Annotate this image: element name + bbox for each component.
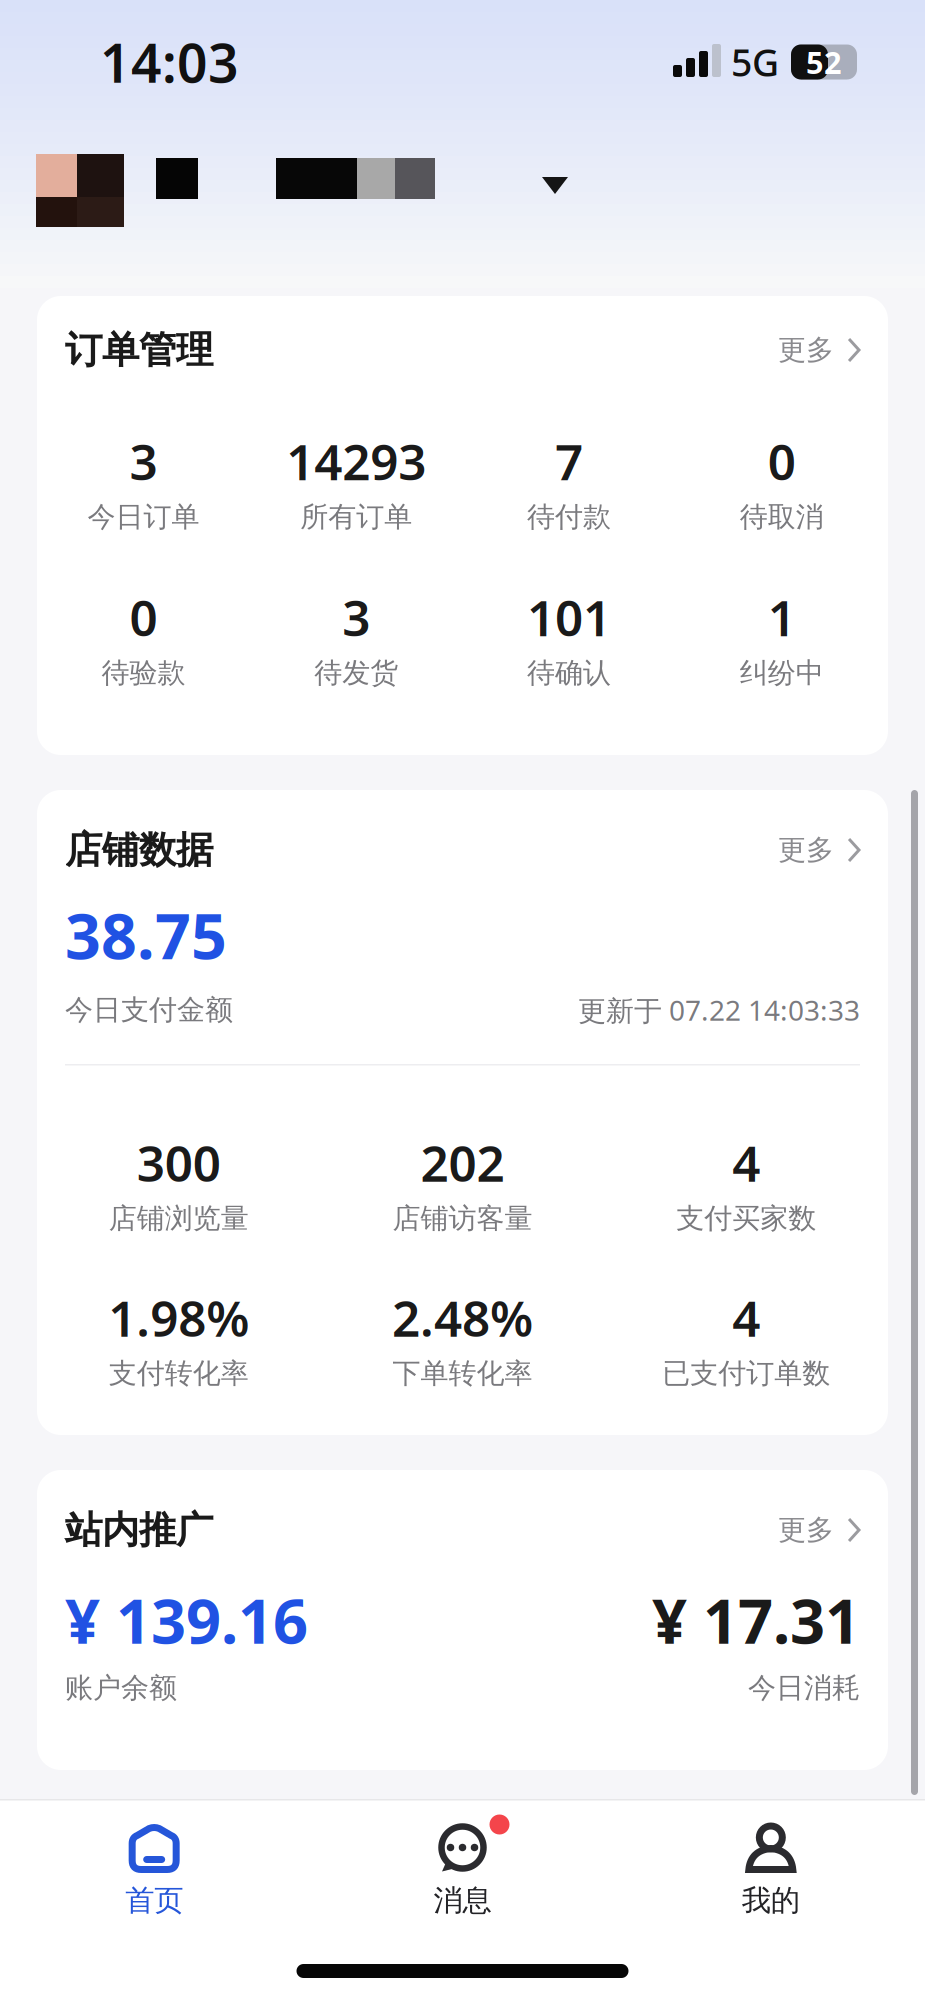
staticText: 首页: [125, 1882, 183, 1918]
staticText: 101: [527, 584, 611, 650]
staticText: 站内推广: [65, 1507, 213, 1553]
button[interactable]: 0: [675, 431, 888, 539]
button[interactable]: 0: [37, 587, 250, 695]
staticText: 店铺数据: [65, 827, 213, 873]
staticText: 今日订单: [87, 500, 199, 534]
staticText: 更多: [778, 333, 834, 367]
staticText: 支付转化率: [109, 1356, 249, 1391]
staticText: 消息: [433, 1882, 491, 1918]
button[interactable]: 更多: [778, 1505, 860, 1555]
staticText: 7: [555, 428, 583, 494]
staticText: 所有订单: [300, 500, 412, 534]
staticText: 2.48%: [392, 1285, 533, 1350]
staticText: 我的: [742, 1882, 800, 1918]
staticText: 支付买家数: [676, 1201, 816, 1236]
staticText: 店铺浏览量: [109, 1201, 249, 1236]
staticText: 下单转化率: [392, 1356, 532, 1391]
staticText: 待发货: [314, 656, 398, 690]
staticText: ¥ 139.16: [65, 1579, 308, 1661]
staticText: 待付款: [527, 500, 611, 534]
staticText: 14:03: [100, 27, 239, 97]
button[interactable]: 更多: [778, 825, 860, 875]
staticText: 已支付订单数: [662, 1356, 830, 1391]
staticText: 更多: [778, 833, 834, 867]
staticText: 账户余额: [65, 1671, 177, 1705]
staticText: 0: [768, 428, 796, 494]
button[interactable]: 更多: [778, 325, 860, 375]
staticText: 3: [342, 584, 370, 650]
button[interactable]: 1: [675, 587, 888, 695]
staticText: 0: [129, 584, 157, 650]
staticText: 300: [137, 1130, 221, 1195]
staticText: 1: [768, 584, 796, 650]
staticText: 更新于 07.22 14:03:33: [578, 991, 860, 1029]
staticText: 待验款: [101, 656, 185, 690]
staticText: 今日消耗: [748, 1671, 860, 1705]
staticText: 订单管理: [65, 327, 213, 373]
staticText: 14293: [286, 428, 426, 494]
button[interactable]: 101: [462, 587, 675, 695]
staticText: 待确认: [527, 656, 611, 690]
staticText: 纠纷中: [740, 656, 824, 690]
staticText: 4: [732, 1285, 760, 1350]
staticText: 待取消: [740, 500, 824, 534]
staticText: ¥ 17.31: [652, 1579, 860, 1661]
button[interactable]: 首页: [0, 1800, 308, 1922]
staticText: 店铺访客量: [392, 1201, 532, 1236]
button[interactable]: 14293: [250, 431, 463, 539]
button[interactable]: 3: [250, 587, 463, 695]
staticText: 更多: [778, 1513, 834, 1547]
staticText: 202: [420, 1130, 504, 1195]
staticText: 52: [806, 42, 842, 82]
staticText: 3: [129, 428, 157, 494]
staticText: 5G: [731, 37, 779, 87]
button[interactable]: 消息: [308, 1800, 617, 1922]
staticText: 4: [732, 1130, 760, 1195]
staticText: 1.98%: [108, 1285, 249, 1350]
button[interactable]: 我的: [617, 1800, 925, 1922]
staticText: 今日支付金额: [65, 993, 233, 1027]
button[interactable]: 7: [462, 431, 675, 539]
staticText: 38.75: [65, 893, 227, 977]
button[interactable]: 3: [37, 431, 250, 539]
button[interactable]: 店铺切换: [0, 154, 925, 227]
